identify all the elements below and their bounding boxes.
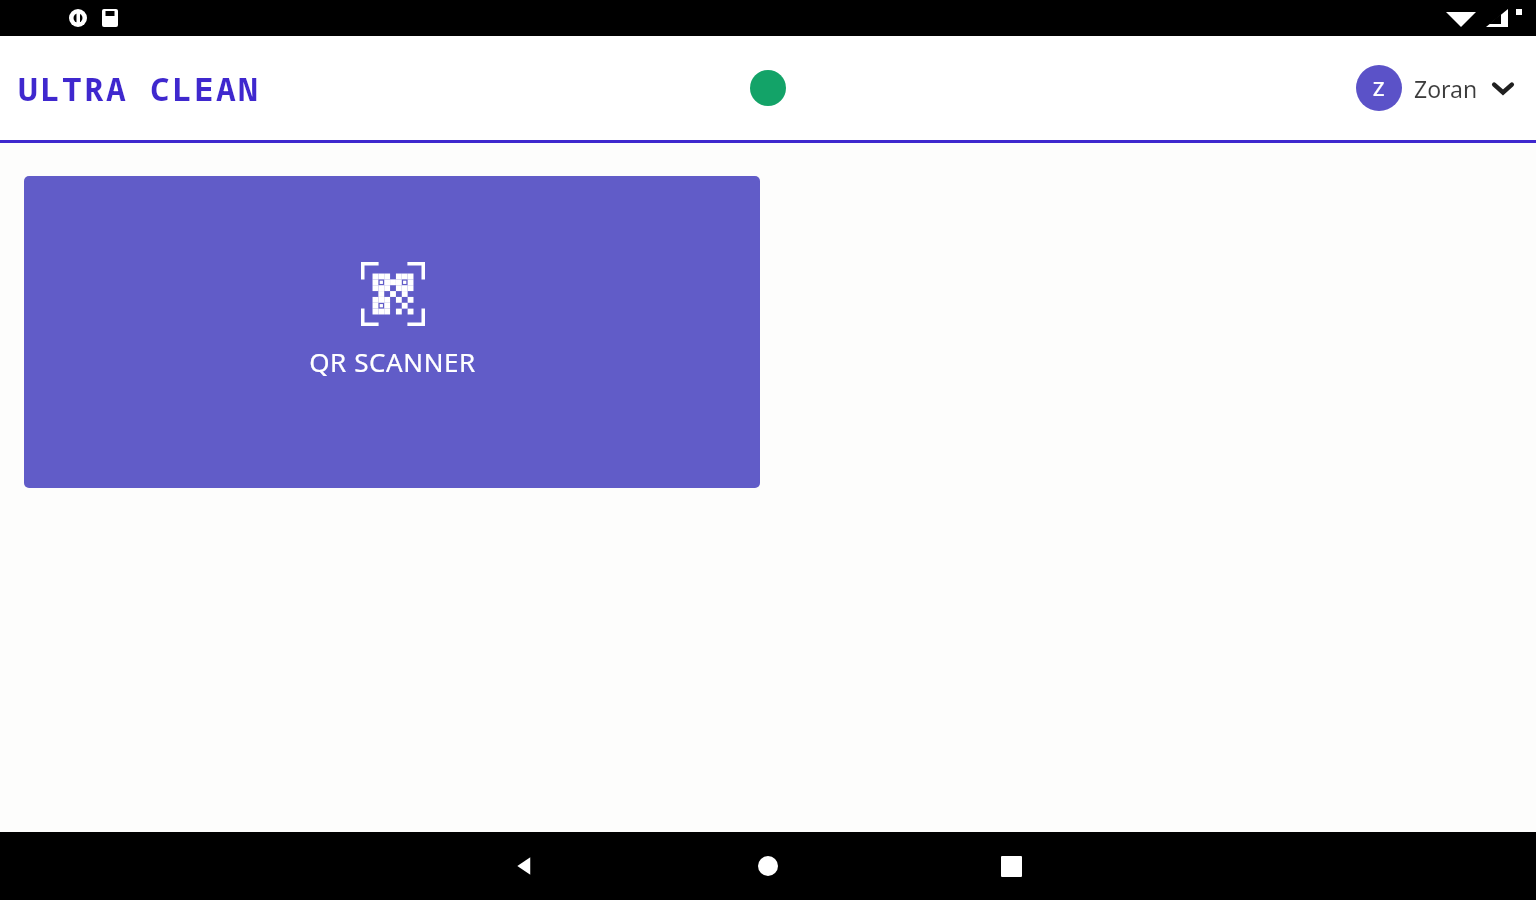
button[interactable]: Z — [1352, 61, 1522, 115]
staticText: Z — [1373, 75, 1385, 102]
button[interactable]: Recent apps — [981, 836, 1041, 896]
staticText: ULTRA CLEAN — [18, 66, 261, 111]
staticText: Zoran — [1414, 73, 1478, 104]
staticText: QR SCANNER — [309, 344, 476, 379]
button[interactable]: Home — [738, 836, 798, 896]
button[interactable]: Back — [495, 836, 555, 896]
button[interactable]: Connection status: online — [750, 70, 786, 106]
button[interactable]: ULTRA CLEAN — [16, 62, 263, 115]
button[interactable]: QR SCANNER — [24, 176, 760, 488]
